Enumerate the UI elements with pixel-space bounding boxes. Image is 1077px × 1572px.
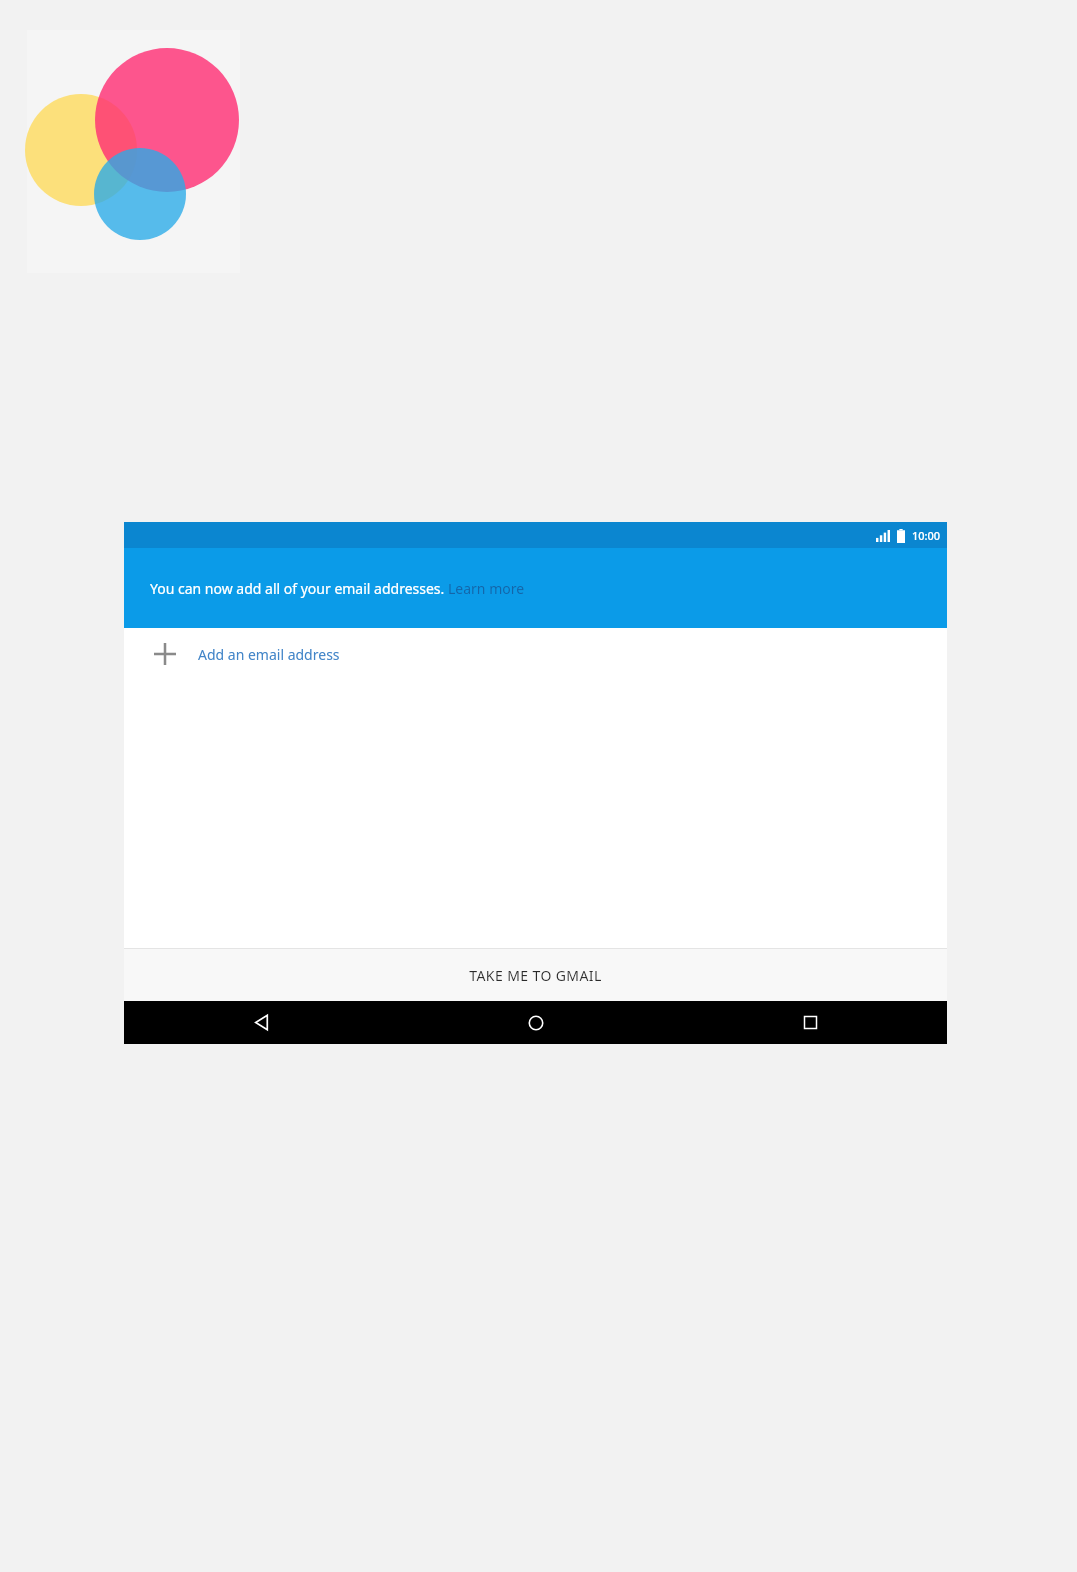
- button[interactable]: Add an email address: [124, 628, 947, 680]
- staticText: 10:00: [912, 528, 941, 543]
- button[interactable]: Learn more: [448, 579, 525, 598]
- staticText: Learn more: [448, 579, 525, 598]
- other: Signal strength: [876, 530, 890, 542]
- button[interactable]: TAKE ME TO GMAIL: [124, 949, 947, 1001]
- other: Battery: [897, 529, 905, 543]
- button[interactable]: Recent apps: [673, 1001, 947, 1044]
- staticText: TAKE ME TO GMAIL: [469, 966, 602, 985]
- staticText: Add an email address: [198, 645, 340, 664]
- staticText: You can now add all of your email addres…: [150, 579, 448, 598]
- button[interactable]: Home: [399, 1001, 673, 1044]
- button[interactable]: Back: [124, 1001, 399, 1044]
